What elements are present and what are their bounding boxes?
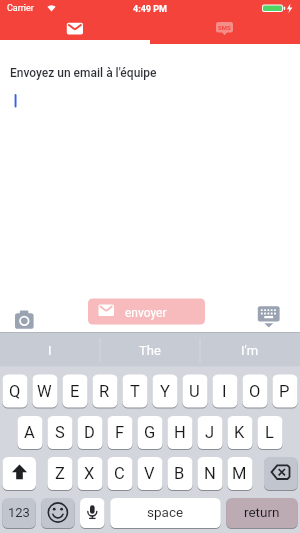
staticText: C [114, 464, 125, 483]
staticText: F [115, 423, 125, 442]
staticText: Y [160, 382, 170, 401]
staticText: G [144, 423, 156, 442]
staticText: SMS [218, 24, 231, 31]
staticText: K [234, 423, 245, 442]
staticText: U [189, 382, 200, 401]
staticText: The [139, 343, 161, 358]
staticText: return [244, 504, 280, 520]
staticText: E [70, 382, 80, 401]
staticText: I [222, 382, 227, 401]
staticText: N [204, 464, 216, 483]
staticText: X [84, 464, 95, 483]
staticText: L [265, 423, 274, 442]
staticText: P [279, 382, 290, 401]
staticText: B [174, 464, 185, 483]
staticText: W [37, 382, 52, 401]
staticText: I [48, 343, 52, 358]
staticText: O [249, 382, 261, 401]
staticText: T [130, 382, 140, 401]
staticText: Z [55, 464, 65, 483]
staticText: H [174, 423, 186, 442]
staticText: Envoyez un email à l'équipe [10, 66, 157, 80]
staticText: D [84, 423, 95, 442]
staticText: V [144, 464, 155, 483]
staticText: Q [9, 382, 21, 401]
staticText: 123 [8, 505, 30, 520]
staticText: 4:49 PM [133, 4, 167, 15]
staticText: R [99, 382, 110, 401]
staticText: envoyer [125, 306, 167, 320]
staticText: I'm [241, 343, 259, 358]
staticText: A [24, 423, 35, 442]
staticText: space [147, 504, 184, 520]
staticText: J [205, 423, 215, 442]
staticText: M [232, 464, 247, 483]
staticText: Carrier [7, 3, 34, 14]
staticText: S [55, 423, 65, 442]
